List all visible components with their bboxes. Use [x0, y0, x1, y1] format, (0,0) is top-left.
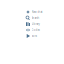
staticText: Library: [31, 22, 39, 26]
button[interactable]: Library: [26, 21, 48, 27]
button[interactable]: New chat: [26, 9, 48, 15]
button[interactable]: Search: [26, 15, 48, 21]
staticText: Sora: [31, 34, 36, 38]
staticText: New chat: [31, 10, 42, 14]
button[interactable]: Codex: [26, 27, 48, 33]
button[interactable]: Sora: [26, 33, 48, 39]
staticText: Codex: [31, 28, 39, 32]
staticText: Search: [31, 16, 39, 20]
